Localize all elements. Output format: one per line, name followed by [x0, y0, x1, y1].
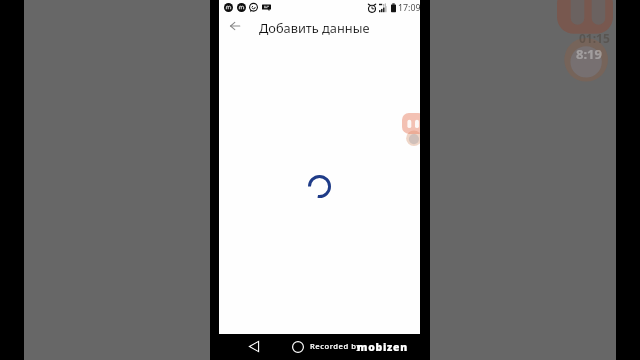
- staticText: 8:19: [576, 45, 602, 63]
- staticText: 17:09: [398, 2, 420, 14]
- button[interactable]: Home: [288, 337, 308, 357]
- staticText: Recorded by: [310, 341, 361, 351]
- staticText: 01:15: [579, 30, 610, 46]
- button[interactable]: Назад: [225, 16, 245, 36]
- staticText: Добавить данные: [259, 19, 370, 36]
- staticText: mobizen: [357, 340, 408, 354]
- button[interactable]: Back: [244, 337, 263, 356]
